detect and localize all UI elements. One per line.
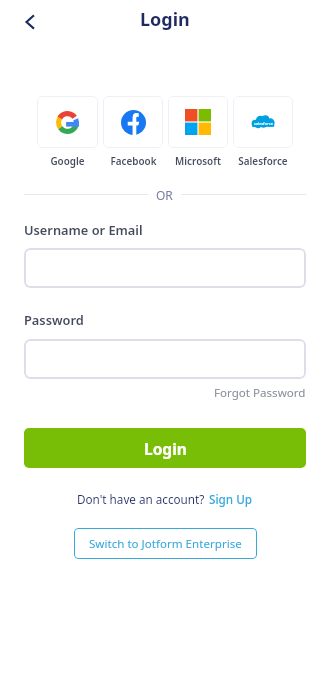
- button[interactable]: salesforce: [233, 96, 293, 167]
- staticText: Username or Email: [24, 221, 143, 238]
- button[interactable]: Forgot Password: [214, 385, 306, 401]
- staticText: Login: [144, 438, 187, 459]
- button[interactable]: Back: [14, 6, 46, 38]
- staticText: Salesforce: [238, 154, 288, 167]
- staticText: Login: [140, 7, 190, 32]
- button[interactable]: Microsoft: [168, 96, 228, 167]
- staticText: Facebook: [110, 154, 157, 167]
- staticText: Switch to Jotform Enterprise: [89, 536, 242, 552]
- button[interactable]: Login: [24, 428, 306, 468]
- button[interactable]: [24, 339, 306, 379]
- button[interactable]: [24, 248, 306, 288]
- staticText: Password: [24, 311, 84, 328]
- staticText: Microsoft: [175, 154, 221, 167]
- staticText: salesforce: [254, 121, 273, 126]
- staticText: Google: [50, 154, 85, 167]
- staticText: OR: [156, 187, 173, 202]
- button[interactable]: Switch to Jotform Enterprise: [74, 528, 257, 559]
- button[interactable]: Google: [37, 96, 98, 167]
- staticText: Don't have an account?: [77, 491, 205, 507]
- button[interactable]: Sign Up: [209, 491, 253, 507]
- button[interactable]: Facebook: [103, 96, 163, 167]
